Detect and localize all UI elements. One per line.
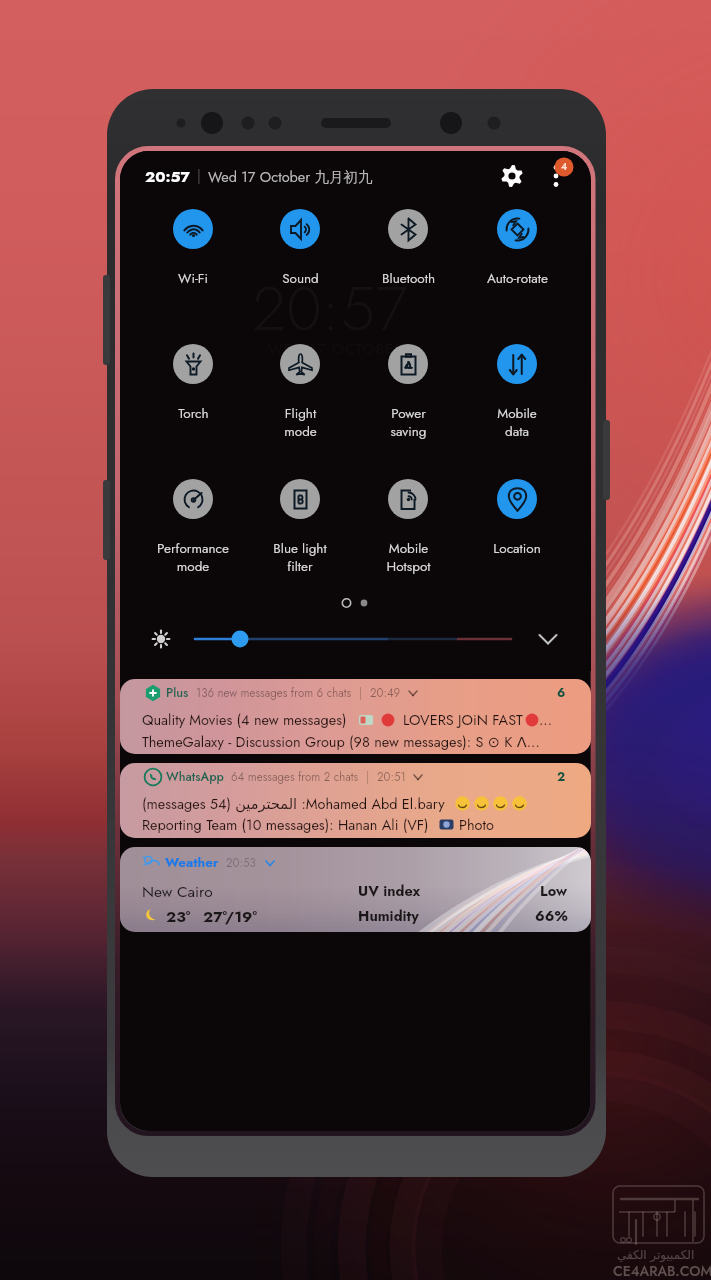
- staticText: (messages 54) المحترمين :Mohamed Abd El.…: [142, 793, 445, 814]
- staticText: Weather: [165, 853, 219, 873]
- button[interactable]: Brightness: [120, 617, 591, 661]
- button[interactable]: Location: [462, 472, 572, 572]
- staticText: Flight mode: [284, 404, 317, 441]
- button[interactable]: Torch: [138, 337, 248, 437]
- staticText: 20:57: [252, 264, 408, 354]
- staticText: Bluetooth: [382, 269, 435, 289]
- staticText: Mobile Hotspot: [386, 539, 431, 576]
- staticText: Performance mode: [157, 539, 229, 576]
- button[interactable]: Auto-rotate: [462, 202, 572, 302]
- staticText: Blue light filter: [273, 539, 327, 576]
- staticText: الكمبيوتر الكفي: [617, 1246, 695, 1263]
- button[interactable]: Bluetooth: [353, 202, 463, 302]
- staticText: UV index: [358, 880, 421, 901]
- button[interactable]: Wi-Fi: [138, 202, 248, 302]
- staticText: CE4ARAB.COM: [613, 1261, 711, 1280]
- staticText: LOVERS JOiN FAST: [403, 709, 523, 730]
- button[interactable]: Mobile data: [462, 337, 572, 437]
- staticText: ThemeGalaxy - Discussion Group (98 new m…: [142, 731, 582, 752]
- staticText: |: [359, 685, 363, 702]
- staticText: WED 17 OCTOBER: [268, 338, 404, 360]
- button[interactable]: Power saving: [353, 337, 463, 437]
- staticText: Location: [493, 539, 541, 559]
- button[interactable]: Performance mode: [138, 472, 248, 572]
- button[interactable]: Blue light filter: [245, 472, 355, 572]
- staticText: 64 messages from 2 chats: [231, 769, 359, 786]
- staticText: |: [366, 769, 370, 786]
- staticText: 136 new messages from 6 chats: [196, 685, 352, 702]
- button[interactable]: Plus: [120, 679, 591, 754]
- staticText: Torch: [178, 404, 209, 424]
- staticText: 20:53: [226, 855, 256, 872]
- staticText: 6: [557, 684, 566, 702]
- button[interactable]: Sound: [245, 202, 355, 302]
- staticText: Wed 17 October 九月初九: [208, 166, 373, 187]
- staticText: Humidity: [358, 905, 419, 926]
- staticText: Power saving: [390, 404, 427, 441]
- button[interactable]: WhatsApp: [120, 763, 591, 838]
- staticText: Quality Movies (4 new messages): [142, 709, 347, 730]
- staticText: Plus: [166, 684, 189, 702]
- button[interactable]: Mobile Hotspot: [353, 472, 463, 572]
- staticText: 23°: [166, 905, 191, 927]
- staticText: 27°/19°: [203, 905, 258, 927]
- staticText: 20:51: [377, 769, 406, 786]
- staticText: 2: [557, 768, 566, 786]
- button[interactable]: More options: [541, 159, 575, 193]
- button[interactable]: Weather: [120, 847, 591, 932]
- staticText: Sound: [282, 269, 319, 289]
- staticText: |: [197, 166, 201, 186]
- button[interactable]: Flight mode: [245, 337, 355, 437]
- staticText: 20:49: [370, 685, 401, 702]
- staticText: ...: [539, 709, 553, 730]
- staticText: Reporting Team (10 messages): Hanan Ali …: [142, 814, 429, 835]
- staticText: Low: [540, 880, 568, 901]
- staticText: 66%: [535, 905, 568, 926]
- staticText: Photo: [459, 814, 494, 835]
- staticText: New Cairo: [142, 880, 213, 902]
- staticText: Mobile data: [497, 404, 537, 441]
- staticText: Auto-rotate: [487, 269, 548, 289]
- staticText: 4: [561, 159, 568, 173]
- staticText: WhatsApp: [166, 768, 224, 786]
- staticText: Wi-Fi: [178, 269, 208, 289]
- button[interactable]: Settings: [497, 161, 527, 191]
- staticText: 20:57: [145, 165, 190, 187]
